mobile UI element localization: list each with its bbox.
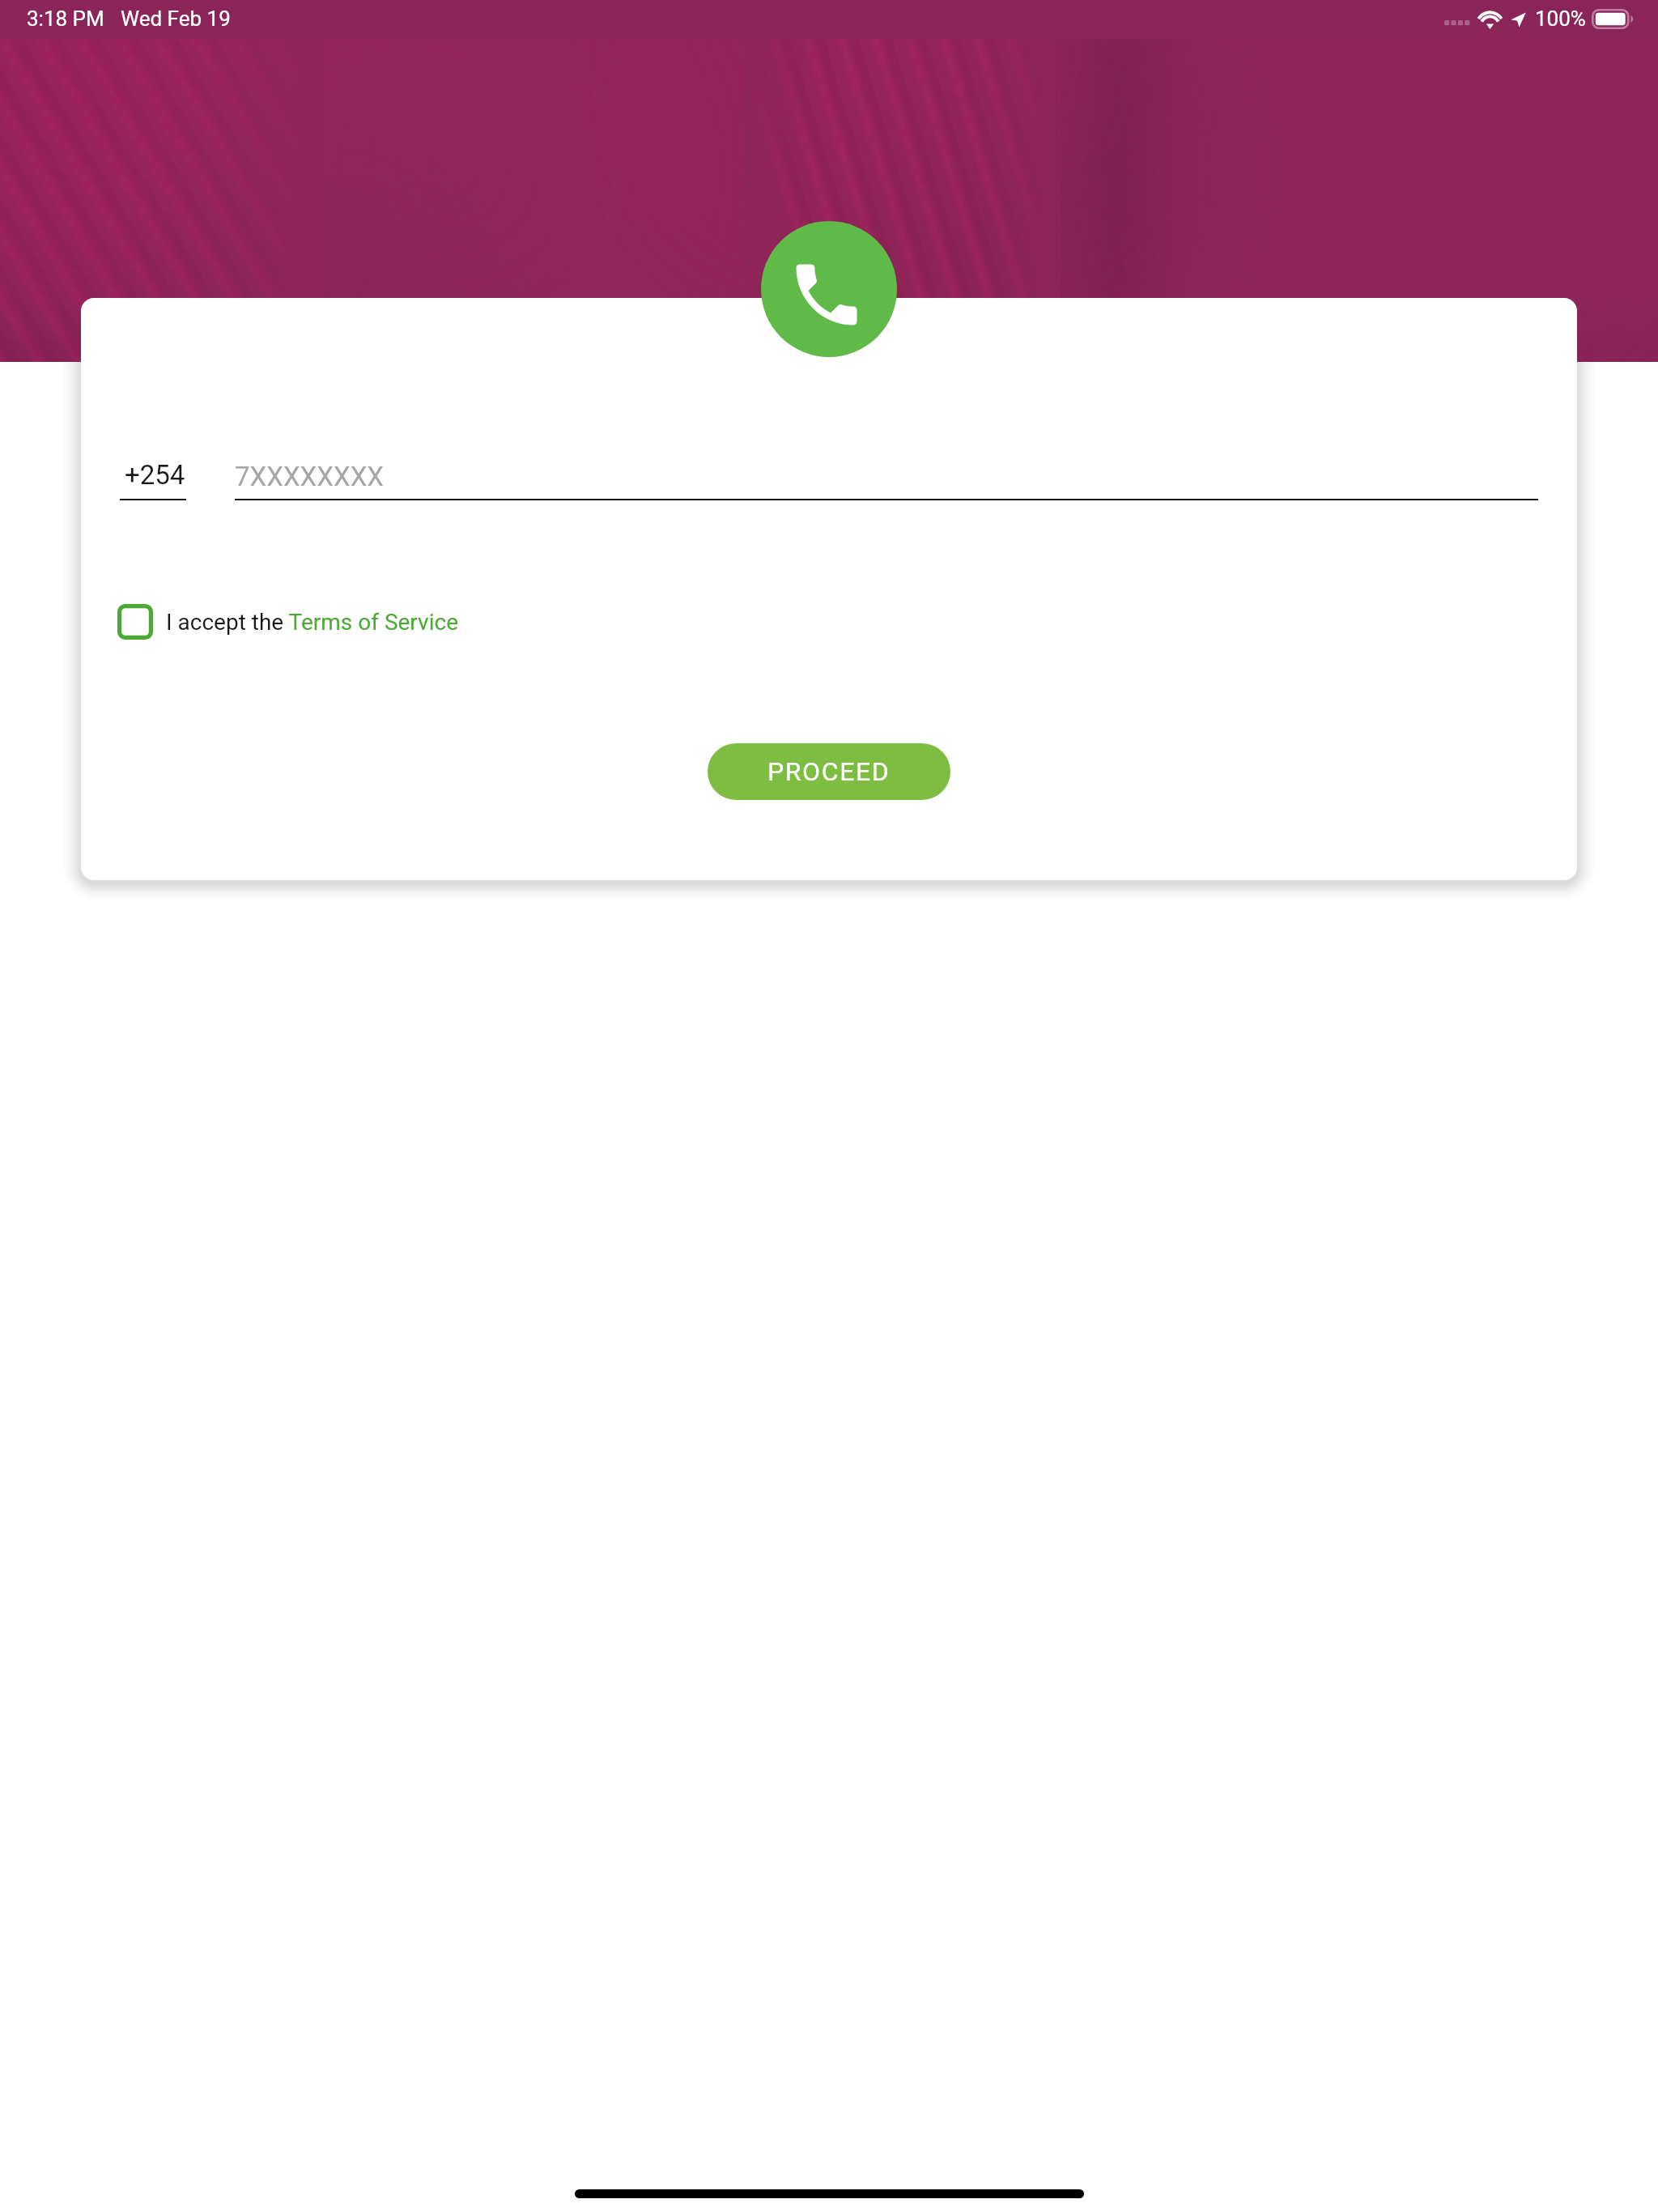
staticText: Wed Feb 19 — [121, 6, 231, 31]
staticText: I accept the Terms of Service — [166, 609, 458, 636]
button[interactable]: Phone number — [235, 444, 1538, 500]
staticText: 100% — [1535, 6, 1586, 31]
button[interactable]: PROCEED — [708, 743, 950, 800]
button[interactable]: I accept the Terms of Service — [117, 604, 458, 640]
staticText: 3:18 PM — [27, 6, 104, 31]
button[interactable]: Call — [761, 221, 897, 357]
staticText: 7XXXXXXXX — [235, 461, 385, 492]
staticText: PROCEED — [767, 756, 891, 787]
staticText: +254 — [125, 459, 185, 491]
button[interactable]: Country code +254 — [120, 444, 186, 500]
